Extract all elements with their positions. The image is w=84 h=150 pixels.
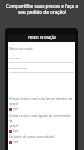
staticText: Faz parte de nossa comunidade? bbox=[9, 135, 55, 139]
staticText: Sim bbox=[13, 107, 19, 111]
staticText: Deseja receber uma ligação de um membro … bbox=[9, 114, 74, 128]
button[interactable]: Sim bbox=[9, 129, 19, 133]
staticText: Pedido de oração bbox=[9, 67, 27, 70]
staticText: Deseja receber uma visita de um membro d… bbox=[9, 97, 73, 106]
staticText: seu pedido de oração! bbox=[18, 9, 67, 15]
button[interactable]: Sim bbox=[9, 107, 19, 111]
staticText: Seu nome bbox=[9, 57, 20, 60]
staticText: Compartilhe suas preces e faça o bbox=[6, 3, 79, 9]
staticText: Motivo da oração bbox=[9, 47, 33, 51]
staticText: Sim bbox=[13, 129, 19, 133]
button[interactable]: Pedido de oração bbox=[9, 67, 74, 73]
staticText: Sim bbox=[13, 140, 19, 144]
button[interactable]: Seu nome bbox=[9, 57, 74, 63]
button[interactable]: Sim bbox=[9, 140, 19, 144]
staticText: PEDIDO DE ORAÇÃO bbox=[28, 36, 56, 40]
